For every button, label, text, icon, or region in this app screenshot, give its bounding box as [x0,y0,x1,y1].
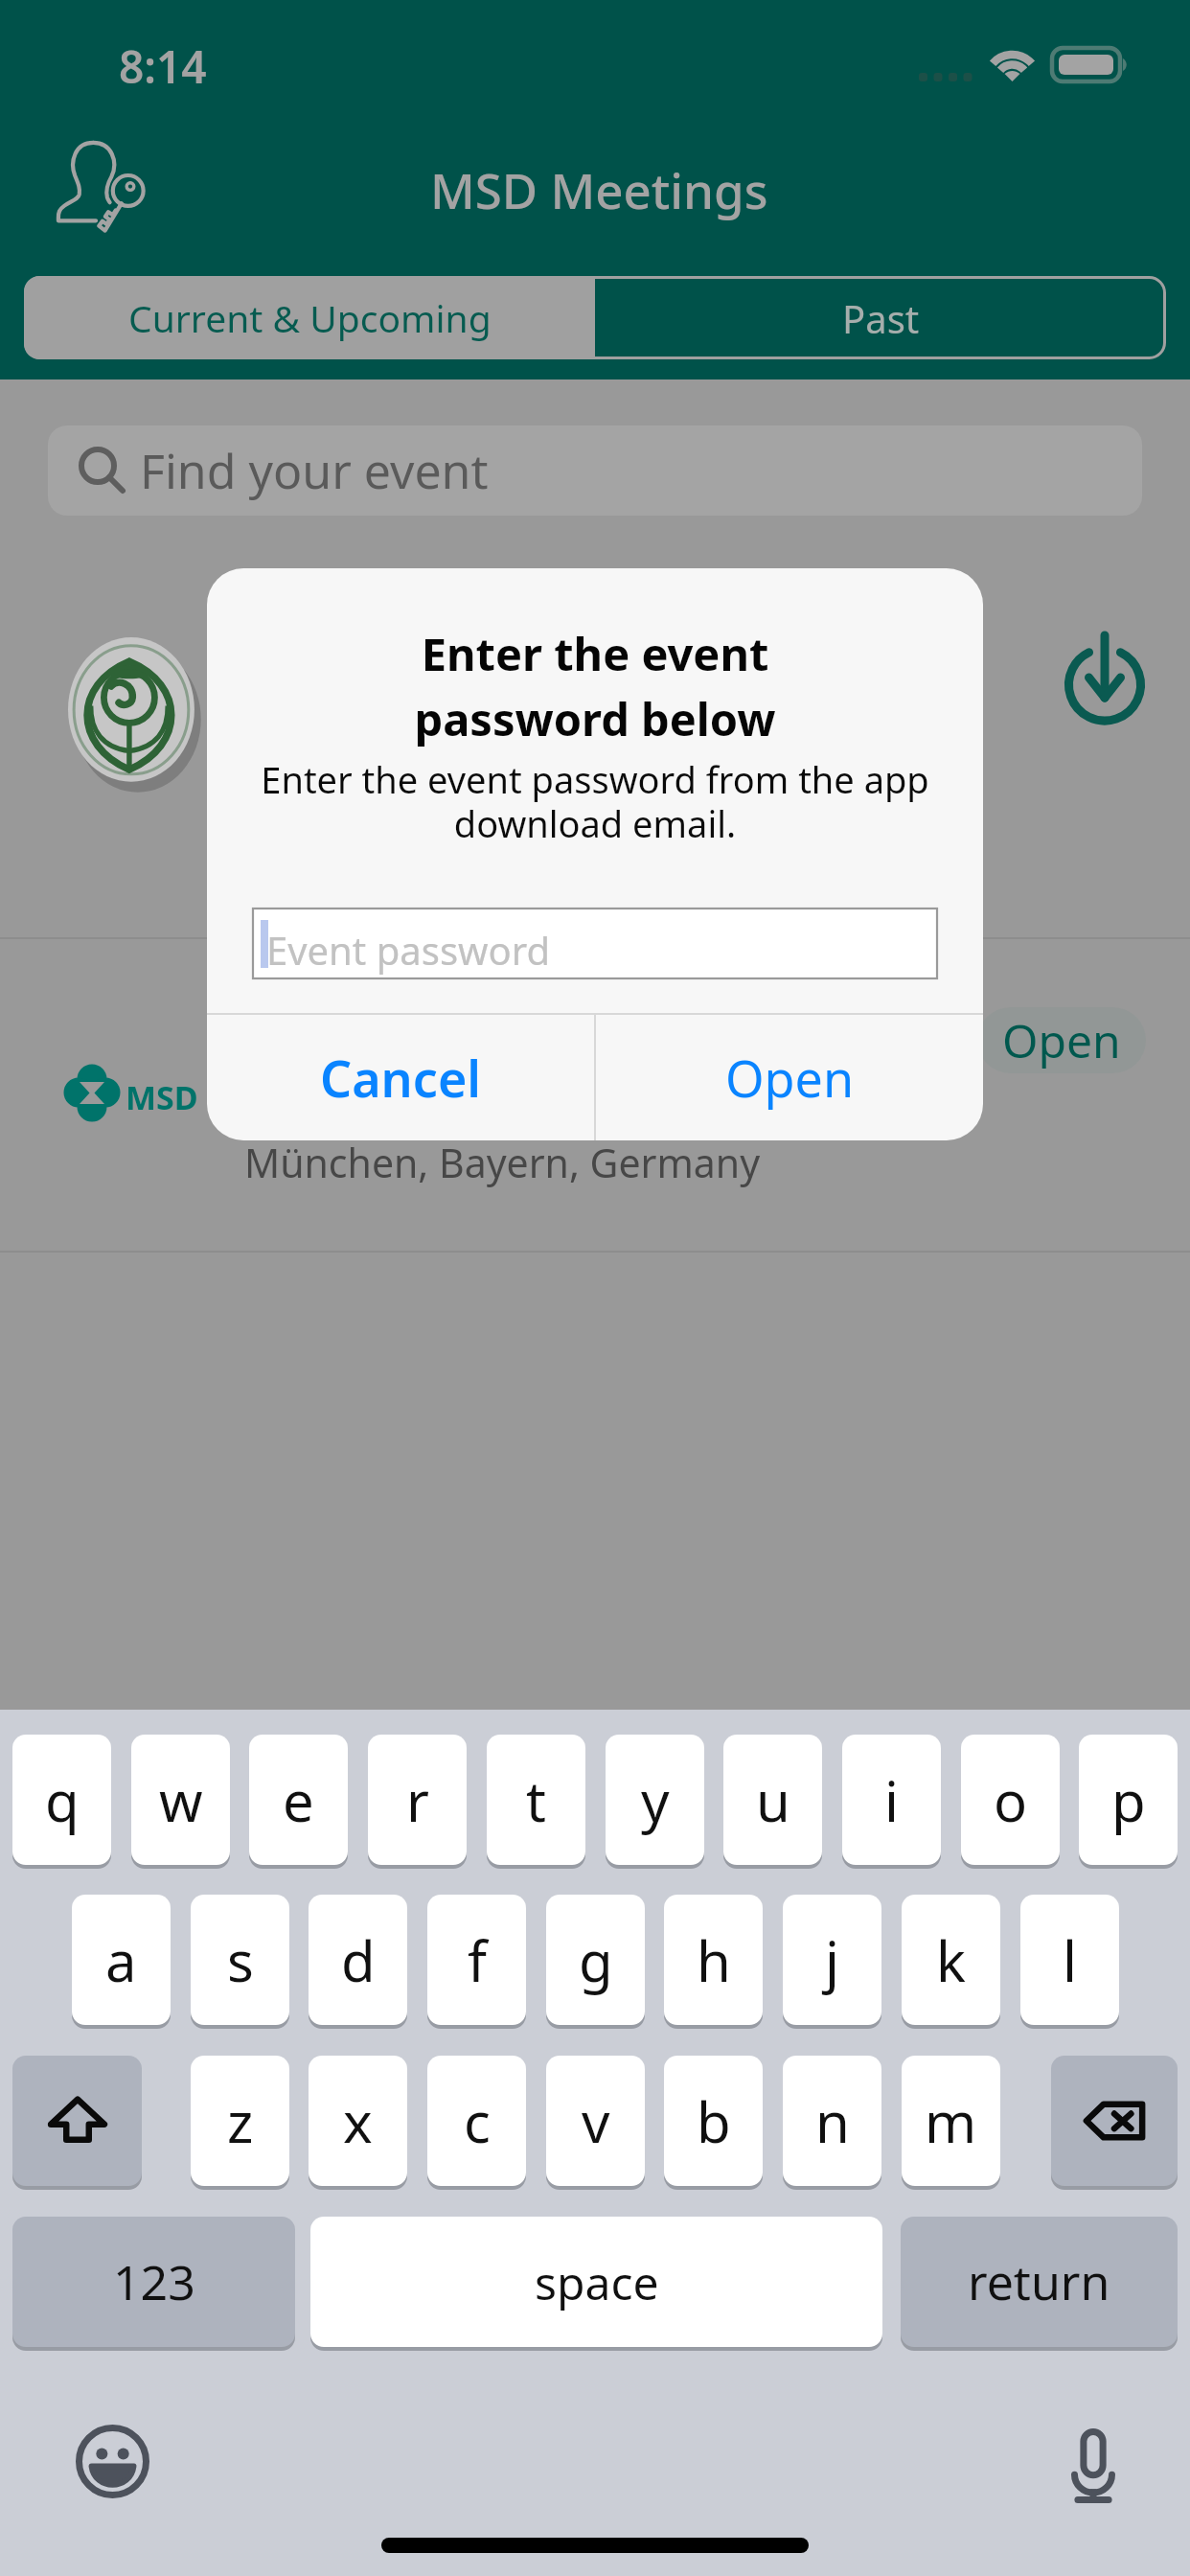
staticText: Open [1002,1009,1121,1071]
staticText: Enter the event password below [217,623,973,748]
button[interactable]: 123 [12,2217,295,2347]
button[interactable]: Cancel [207,1015,594,1140]
button[interactable]: Shift [12,2056,142,2186]
button[interactable]: v [546,2056,645,2186]
button[interactable]: t [487,1735,585,1865]
staticText: Enter the event password from the app do… [217,754,973,848]
staticText: Open [725,1044,855,1112]
staticText: y [641,1762,670,1838]
button[interactable]: n [783,2056,881,2186]
staticText: MSD Meetings [430,156,768,222]
button[interactable]: o [961,1735,1060,1865]
button[interactable]: Find your event [48,425,1142,516]
staticText: t [526,1762,546,1838]
staticText: Past [842,292,920,344]
staticText: c [464,2083,491,2159]
button[interactable]: w [131,1735,230,1865]
button[interactable]: Backspace [1051,2056,1178,2186]
button[interactable]: Event password [253,908,937,978]
button[interactable]: u [723,1735,822,1865]
button[interactable]: p [1079,1735,1178,1865]
staticText: q [45,1762,80,1838]
button[interactable]: Open [977,1007,1146,1073]
staticText: l [1063,1922,1077,1998]
button[interactable]: g [546,1895,645,2025]
button[interactable]: q [12,1735,111,1865]
staticText: h [697,1922,731,1998]
button[interactable]: Emoji keyboard [76,2425,149,2498]
staticText: e [283,1762,314,1838]
staticText: Event password [266,924,550,976]
button[interactable]: Dictation [1071,2428,1115,2503]
staticText: z [227,2083,254,2159]
button[interactable]: m [902,2056,1000,2186]
button[interactable]: c [427,2056,526,2186]
button[interactable]: z [191,2056,289,2186]
button[interactable]: l [1020,1895,1119,2025]
staticText: o [994,1762,1028,1838]
staticText: d [341,1922,376,1998]
button[interactable]: e [249,1735,348,1865]
staticText: m [925,2083,977,2159]
button[interactable]: Event, Perinatal Association [0,546,1190,937]
button[interactable]: Account login [57,141,145,235]
button[interactable]: x [309,2056,407,2186]
staticText: MSD [126,1075,198,1119]
button[interactable]: d [309,1895,407,2025]
button[interactable]: f [427,1895,526,2025]
button[interactable]: return [901,2217,1178,2347]
staticText: Cancel [320,1044,482,1112]
button[interactable]: Download event [1054,628,1154,733]
staticText: Find your event [140,438,489,503]
button[interactable]: y [606,1735,704,1865]
staticText: n [815,2083,850,2159]
button[interactable]: i [842,1735,941,1865]
staticText: p [1111,1762,1146,1838]
button[interactable]: j [783,1895,881,2025]
staticText: v [582,2083,610,2159]
button[interactable]: Current & Upcoming [24,276,595,359]
button[interactable]: space [310,2217,882,2347]
staticText: f [468,1922,487,1998]
staticText: München, Bayern, Germany [244,1136,761,1189]
button[interactable]: k [902,1895,1000,2025]
staticText: i [884,1762,899,1838]
staticText: 8:14 [119,36,207,97]
staticText: x [343,2083,373,2159]
staticText: u [756,1762,790,1838]
staticText: j [825,1922,839,1998]
button[interactable]: b [664,2056,763,2186]
staticText: w [159,1762,203,1838]
button[interactable]: s [191,1895,289,2025]
staticText: s [227,1922,254,1998]
button[interactable]: r [368,1735,467,1865]
staticText: r [406,1762,429,1838]
staticText: b [697,2083,731,2159]
button[interactable]: MSD event, München, Bayern, Germany [0,939,1190,1251]
staticText: a [105,1922,137,1998]
staticText: return [968,2249,1110,2314]
button[interactable]: Open [596,1015,983,1140]
staticText: Current & Upcoming [128,292,492,343]
button[interactable]: a [72,1895,171,2025]
staticText: 123 [113,2249,195,2314]
button[interactable]: Past [595,276,1166,359]
staticText: k [936,1922,966,1998]
button[interactable]: h [664,1895,763,2025]
staticText: g [579,1922,613,1998]
staticText: space [535,2251,659,2313]
